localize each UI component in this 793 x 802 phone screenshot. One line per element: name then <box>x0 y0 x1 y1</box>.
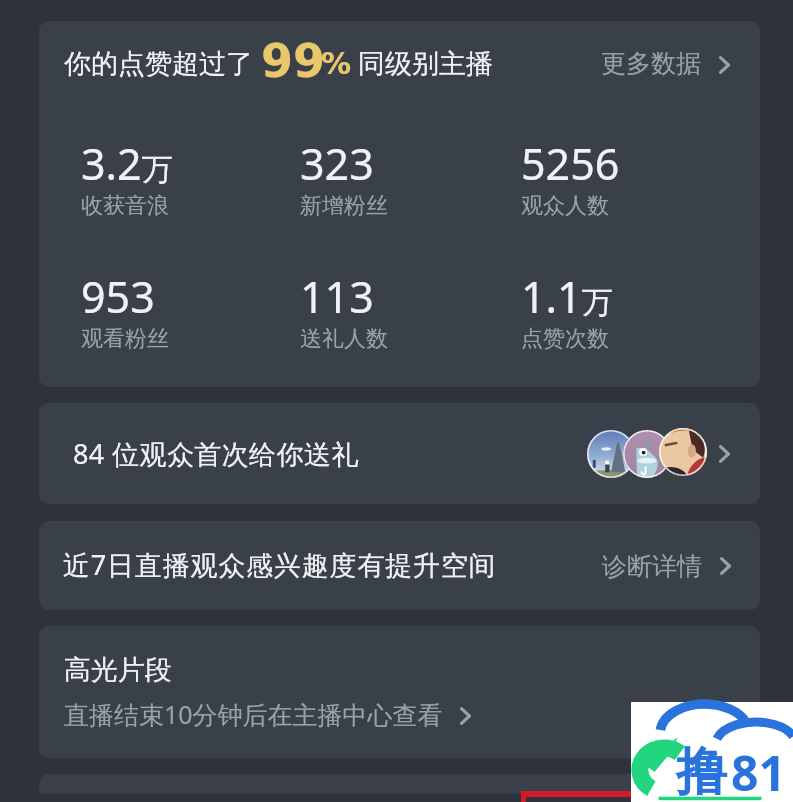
staticText: 高光片段 <box>64 653 172 687</box>
other: View gifters <box>719 445 730 463</box>
staticText: 收获音浪 <box>81 192 169 220</box>
staticText: 观众人数 <box>521 192 609 220</box>
button[interactable]: 更多数据 <box>595 39 740 87</box>
staticText: 1.1 <box>521 267 582 326</box>
button[interactable]: 高光片段 <box>39 626 760 758</box>
staticText: 81 <box>731 740 786 802</box>
staticText: 万 <box>142 150 173 189</box>
staticText: 84 位观众首次给你送礼 <box>73 435 359 472</box>
staticText: 诊断详情 <box>602 551 702 582</box>
button[interactable]: 84 位观众首次给你送礼 <box>39 403 760 504</box>
staticText: 953 <box>81 267 155 326</box>
button[interactable]: 近7日直播观众感兴趣度有提升空间 <box>39 521 760 610</box>
staticText: 99 <box>261 34 326 88</box>
staticText: 万 <box>582 283 613 322</box>
staticText: 送礼人数 <box>300 325 388 353</box>
staticText: 点赞次数 <box>521 325 609 353</box>
staticText: 更多数据 <box>601 48 701 79</box>
staticText: 撸 <box>676 740 727 802</box>
staticText: 5256 <box>521 134 620 193</box>
staticText: 同级别主播 <box>358 47 493 81</box>
staticText: 新增粉丝 <box>300 192 388 220</box>
staticText: 你的点赞超过了 <box>64 47 253 81</box>
staticText: % <box>321 46 352 81</box>
staticText: 直播结束10分钟后在主播中心查看 <box>64 697 443 731</box>
staticText: 近7日直播观众感兴趣度有提升空间 <box>63 546 497 583</box>
staticText: 3.2 <box>81 134 142 193</box>
staticText: 113 <box>300 267 374 326</box>
staticText: 观看粉丝 <box>81 325 169 353</box>
staticText: 323 <box>300 134 374 193</box>
